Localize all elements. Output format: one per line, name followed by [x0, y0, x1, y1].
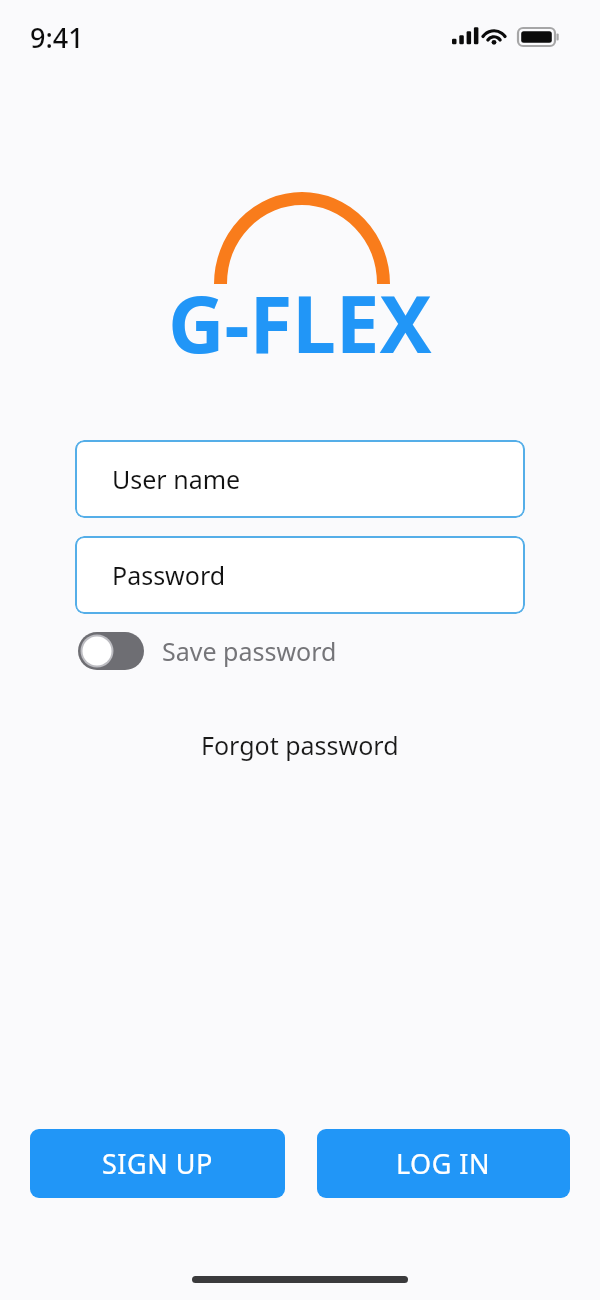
- staticText: Forgot password: [201, 728, 399, 762]
- staticText: 9:41: [30, 19, 84, 56]
- button[interactable]: Forgot password: [189, 722, 411, 768]
- staticText: Save password: [162, 634, 337, 668]
- staticText: User name: [112, 462, 241, 496]
- button[interactable]: User name: [75, 440, 525, 518]
- staticText: G-FLEX: [168, 270, 432, 376]
- button[interactable]: LOG IN: [317, 1129, 570, 1198]
- staticText: LOG IN: [396, 1145, 491, 1182]
- button[interactable]: Password: [75, 536, 525, 614]
- staticText: SIGN UP: [102, 1145, 213, 1182]
- button[interactable]: SIGN UP: [30, 1129, 285, 1198]
- button[interactable]: Save password toggle: [78, 632, 144, 670]
- staticText: Password: [112, 558, 226, 592]
- button[interactable]: Save password toggle: [78, 628, 337, 674]
